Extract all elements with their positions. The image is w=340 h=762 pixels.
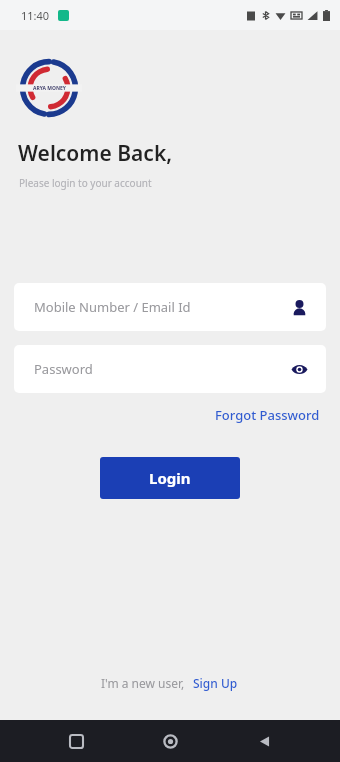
- button[interactable]: Forgot Password: [213, 403, 322, 427]
- staticText: Mobile Number / Email Id: [34, 298, 291, 316]
- button[interactable]: Mobile Number / Email Id: [14, 283, 326, 331]
- other: Show password: [291, 361, 308, 378]
- staticText: 11:40: [21, 8, 50, 23]
- button[interactable]: Password: [14, 345, 326, 393]
- staticText: ARYA MONEY: [33, 85, 66, 92]
- staticText: I'm a new user,: [101, 675, 191, 691]
- staticText: Sign Up: [193, 675, 238, 691]
- button[interactable]: Sign Up: [191, 672, 240, 694]
- button[interactable]: Recents: [58, 723, 94, 759]
- staticText: Welcome Back,: [18, 139, 173, 168]
- button[interactable]: Login: [100, 457, 240, 499]
- staticText: Password: [34, 360, 291, 378]
- button[interactable]: Home: [152, 723, 188, 759]
- staticText: Login: [149, 468, 191, 488]
- staticText: Forgot Password: [215, 406, 320, 424]
- staticText: Please login to your account: [19, 176, 152, 190]
- other: User: [291, 299, 308, 316]
- button[interactable]: Back: [246, 723, 282, 759]
